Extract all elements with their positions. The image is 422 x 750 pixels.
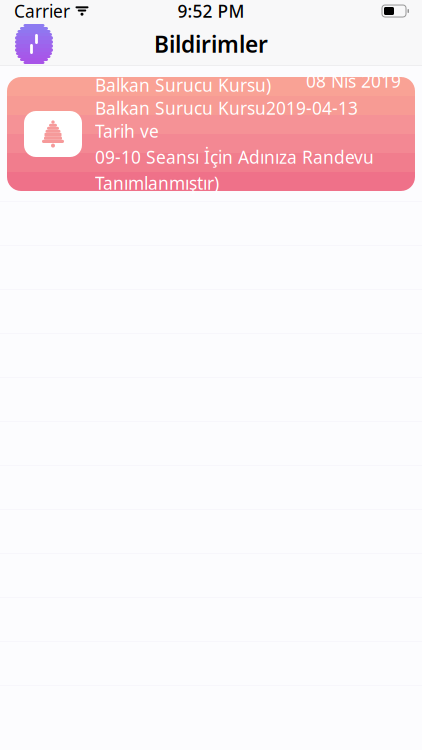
button[interactable]: Back xyxy=(6,22,62,66)
staticText: Bildirimler xyxy=(154,29,268,59)
staticText: 08 Nis 2019 xyxy=(306,69,401,92)
staticText: Tanımlanmıştır) xyxy=(95,171,219,194)
staticText: 9:52 PM xyxy=(177,0,244,22)
button[interactable]: Balkan Surucu Kursu) xyxy=(0,66,422,201)
staticText: Balkan Surucu Kursu2019-04-13 Tarih ve xyxy=(95,96,358,142)
staticText: 09-10 Seansı İçin Adınıza Randevu xyxy=(95,145,374,168)
staticText: Balkan Surucu Kursu) xyxy=(95,73,271,96)
staticText: Carrier xyxy=(14,0,70,22)
